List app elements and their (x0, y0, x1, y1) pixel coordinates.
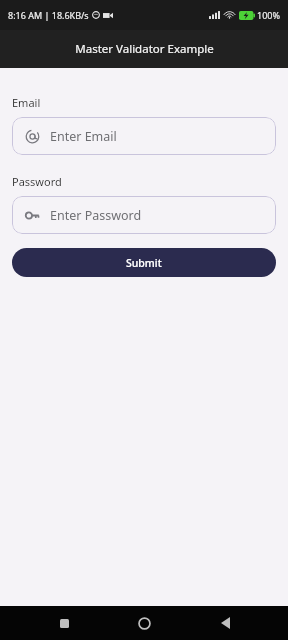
staticText: Master Validator Example (75, 41, 214, 57)
button[interactable]: Back (208, 606, 242, 640)
button[interactable]: Enter Password (12, 196, 276, 234)
button[interactable]: Enter Email (12, 117, 276, 155)
staticText: Password (12, 174, 62, 189)
staticText: Enter Email (50, 128, 117, 145)
button[interactable]: Recent apps (47, 606, 81, 640)
staticText: 100% (257, 9, 280, 21)
staticText: Enter Password (50, 207, 142, 224)
button[interactable]: Submit (12, 248, 276, 277)
staticText: 8:16 AM | 18.6KB/s (8, 9, 89, 21)
button[interactable]: Home (127, 606, 161, 640)
staticText: Submit (126, 256, 162, 270)
staticText: Email (12, 95, 41, 110)
